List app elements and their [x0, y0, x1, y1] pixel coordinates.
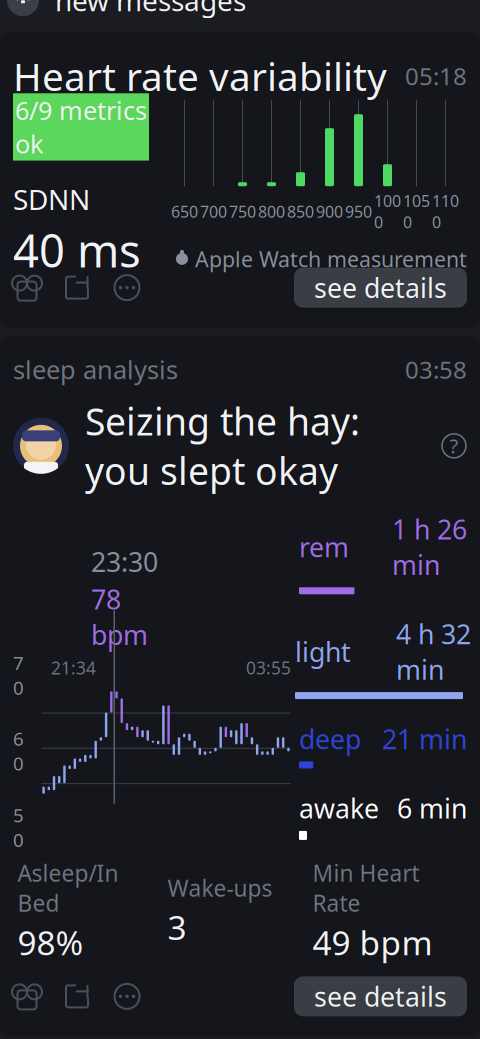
staticText: awake: [299, 790, 379, 826]
staticText: 03:58: [405, 353, 467, 385]
staticText: 800: [258, 201, 285, 222]
staticText: 98%: [17, 920, 83, 964]
staticText: Seizing the hay: you slept okay: [85, 396, 360, 495]
staticText: 50: [13, 803, 24, 852]
staticText: 4 h 32 min: [396, 616, 471, 687]
staticText: 21 min: [382, 721, 467, 756]
staticText: 49 bpm: [312, 920, 432, 964]
staticText: Heart rate variability: [13, 50, 387, 102]
staticText: 78 bpm: [91, 581, 148, 652]
staticText: sleep analysis: [13, 353, 178, 386]
button[interactable]: new messages: [0, 0, 480, 24]
button[interactable]: Favorite: [13, 983, 63, 1009]
staticText: 950: [345, 201, 372, 222]
staticText: heart report: [200, 1033, 306, 1039]
staticText: 900: [316, 201, 343, 222]
staticText: Apple Watch measurement: [195, 245, 467, 273]
staticText: 05:18: [405, 60, 467, 92]
staticText: light: [295, 634, 351, 669]
staticText: deep: [299, 721, 361, 756]
staticText: 40 ms: [13, 220, 141, 280]
staticText: 3: [167, 905, 186, 949]
staticText: 750: [229, 201, 256, 222]
staticText: ?: [449, 433, 458, 459]
staticText: 850: [287, 201, 314, 222]
staticText: 1000: [374, 190, 401, 233]
staticText: 60: [13, 726, 24, 776]
staticText: see details: [314, 270, 447, 305]
button[interactable]: Share: [63, 275, 113, 301]
staticText: 650: [171, 201, 198, 222]
staticText: Asleep/In Bed: [17, 858, 118, 918]
staticText: Yesterday’s: [13, 1033, 200, 1039]
staticText: 6 min: [397, 790, 467, 826]
button[interactable]: Favorite: [13, 275, 63, 301]
button[interactable]: Share: [63, 983, 113, 1009]
staticText: Min Heart Rate: [312, 858, 419, 918]
staticText: 21:34: [51, 656, 96, 679]
staticText: Wake-ups: [167, 873, 272, 903]
staticText: rem: [299, 529, 349, 564]
button[interactable]: Help: [441, 433, 467, 459]
staticText: new messages: [55, 0, 246, 19]
button[interactable]: see details: [294, 268, 467, 308]
button[interactable]: More options: [113, 983, 141, 1009]
button[interactable]: see details: [294, 976, 467, 1016]
staticText: 1 h 26 min: [392, 511, 467, 582]
staticText: 1050: [403, 190, 430, 233]
staticText: 03:55: [246, 656, 291, 679]
staticText: see details: [314, 979, 447, 1014]
staticText: 700: [200, 201, 227, 222]
staticText: 1100: [432, 190, 459, 233]
staticText: 6/9 metrics ok: [15, 93, 147, 161]
button[interactable]: More options: [113, 275, 141, 301]
staticText: 23:30: [91, 544, 158, 579]
staticText: SDNN: [13, 181, 90, 218]
staticText: 70: [13, 650, 24, 700]
